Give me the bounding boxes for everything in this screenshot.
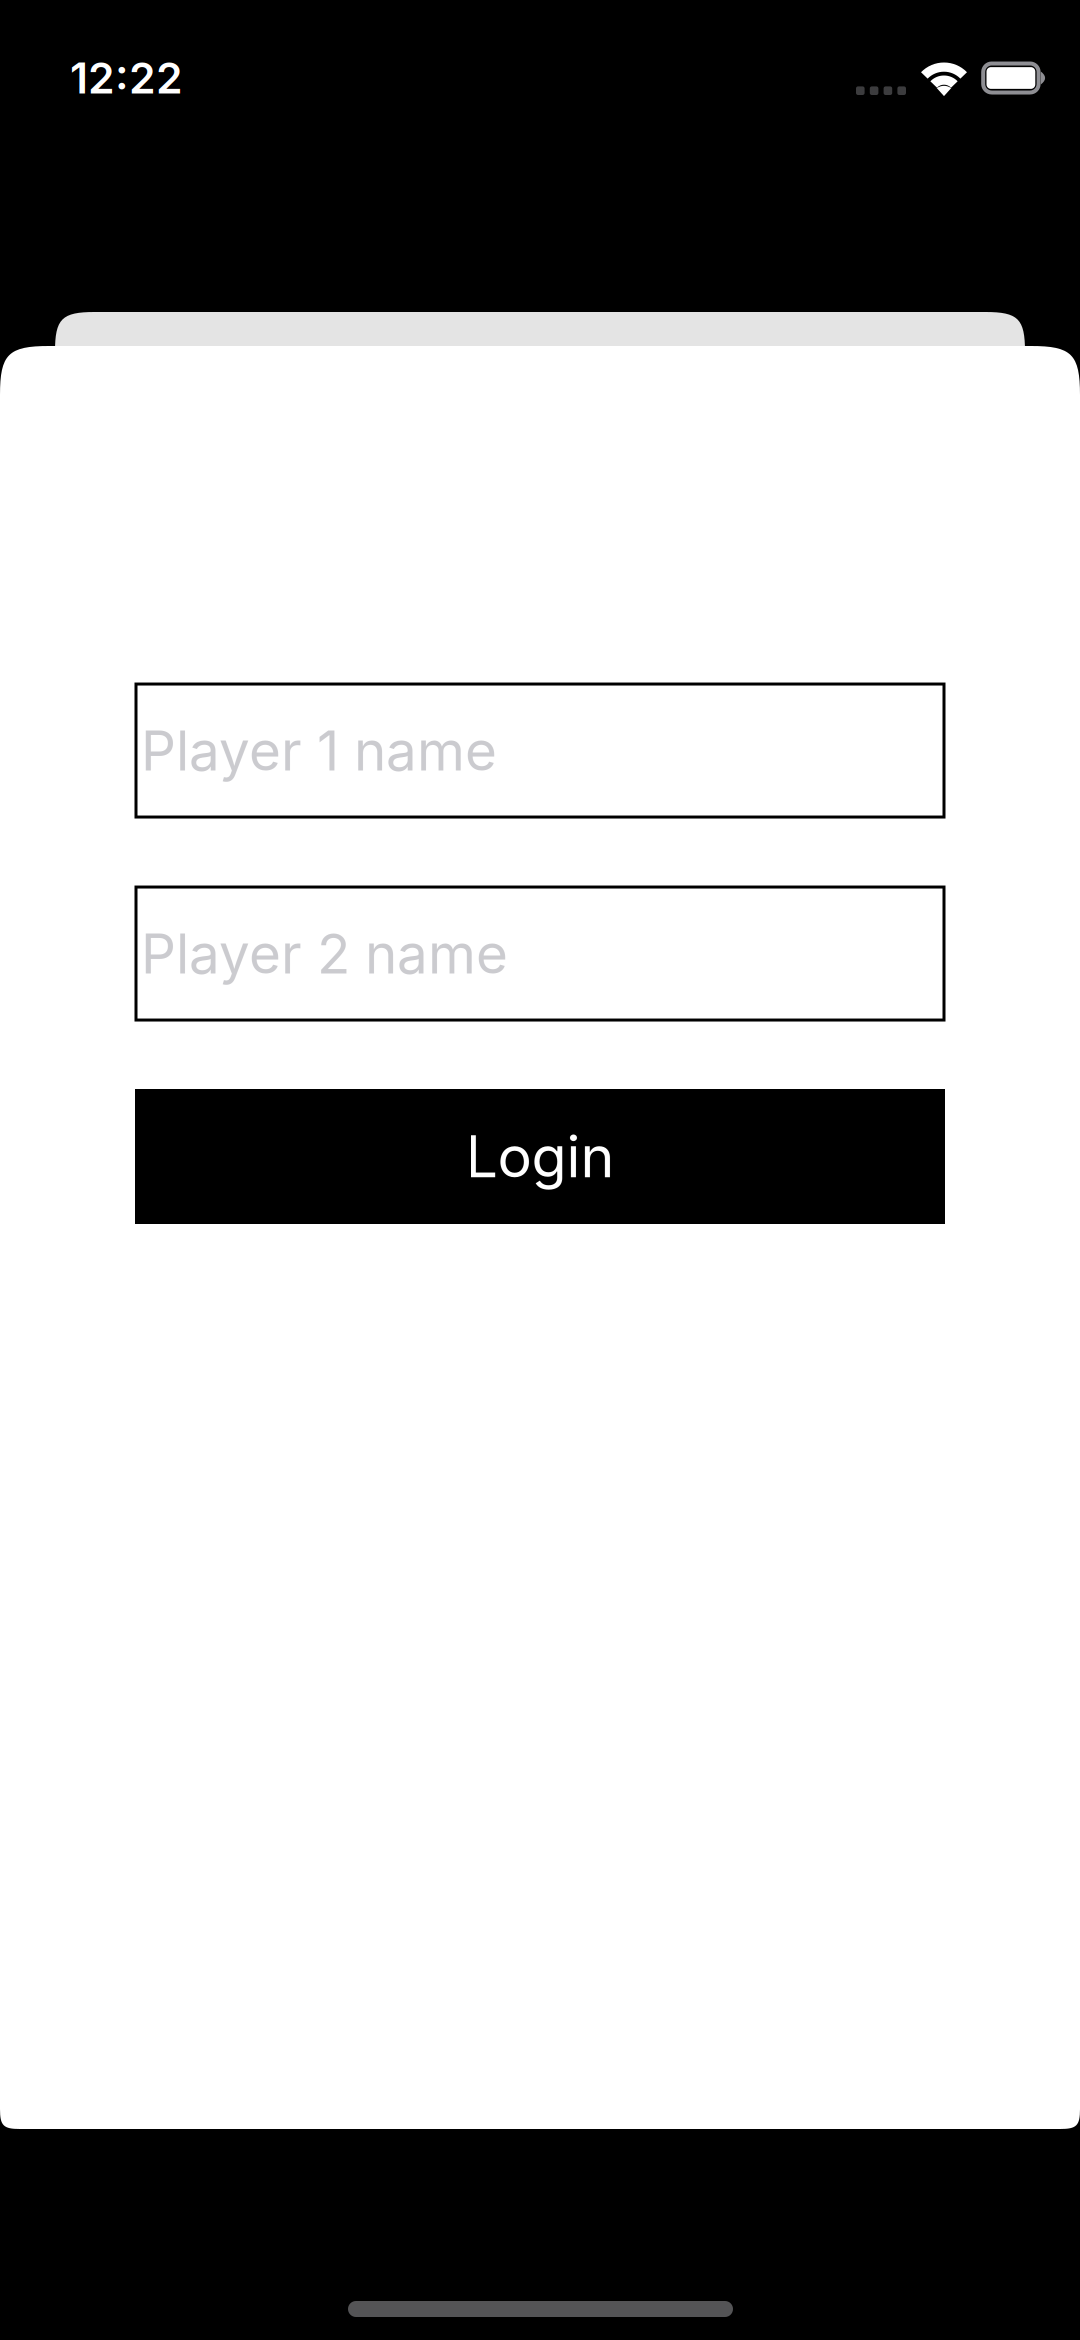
staticText: 12:22 [70, 52, 183, 104]
button[interactable]: Login [135, 1089, 945, 1224]
staticText: Player 2 name [141, 920, 508, 986]
staticText: Player 1 name [141, 717, 497, 783]
button[interactable]: Player 1 name [136, 684, 944, 817]
button[interactable]: Player 2 name [136, 887, 944, 1020]
staticText: Login [465, 1122, 614, 1191]
